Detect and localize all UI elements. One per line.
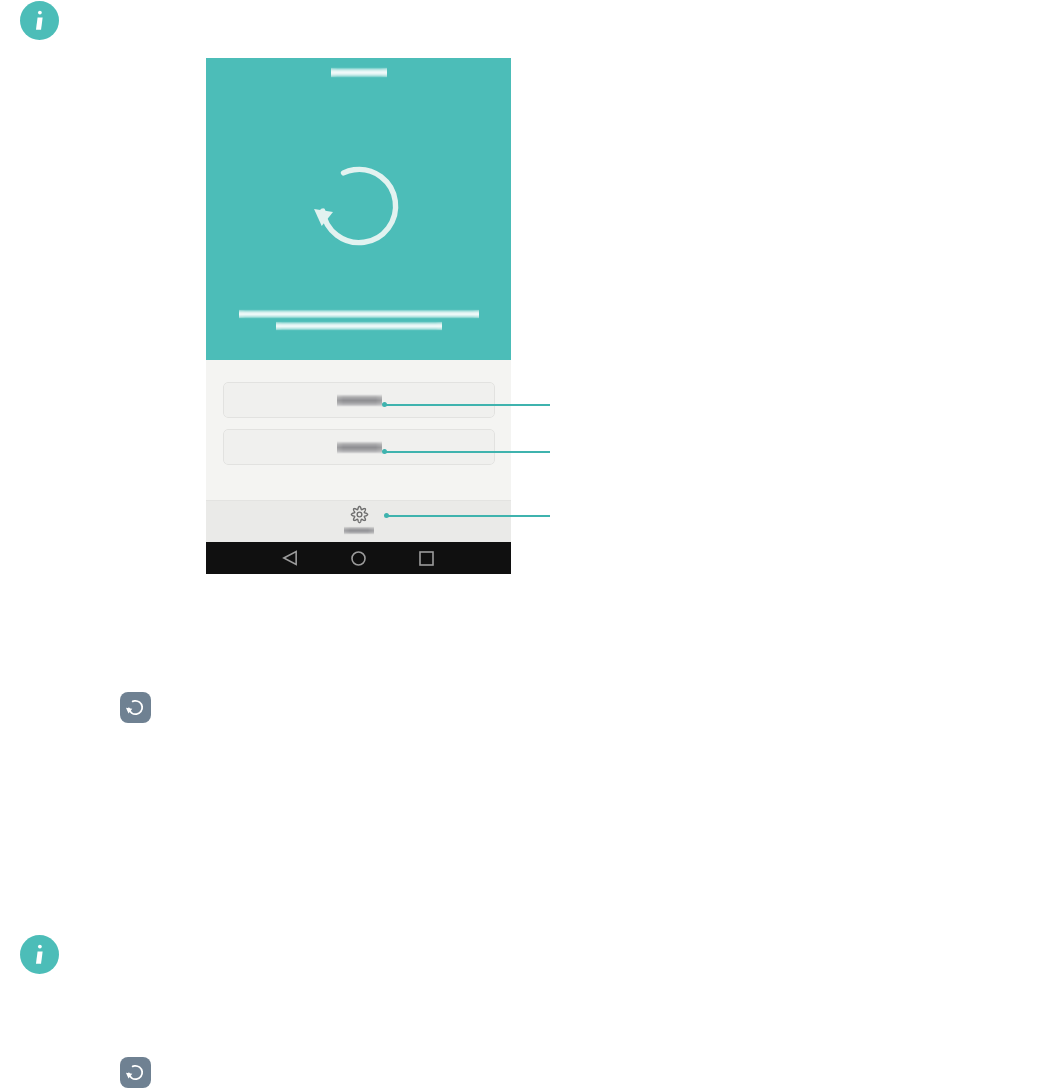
- button[interactable]: [223, 382, 495, 418]
- button[interactable]: Settings: [344, 505, 374, 534]
- button[interactable]: Restore: [120, 692, 151, 723]
- button[interactable]: Restore: [120, 1057, 151, 1088]
- button[interactable]: Recent apps: [414, 546, 438, 570]
- button[interactable]: Information: [20, 935, 59, 974]
- button[interactable]: Home: [346, 546, 370, 570]
- button[interactable]: [223, 429, 495, 465]
- button[interactable]: Information: [20, 1, 59, 40]
- button[interactable]: Back: [278, 546, 302, 570]
